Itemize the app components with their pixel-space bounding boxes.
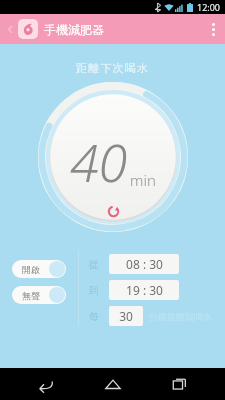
button[interactable]: Reset timer	[102, 200, 124, 222]
staticText: 分鐘提醒我喝水	[149, 311, 212, 322]
button[interactable]: 開啟	[12, 260, 66, 278]
staticText: 距離下次喝水	[76, 61, 150, 75]
staticText: 40	[70, 126, 128, 197]
button[interactable]: Recent apps	[158, 368, 202, 400]
staticText: 開啟	[22, 264, 40, 275]
staticText: 30	[119, 308, 133, 324]
staticText: 從	[89, 258, 103, 271]
button[interactable]: Up	[2, 21, 18, 37]
staticText: 每	[89, 310, 103, 323]
staticText: 08 : 30	[126, 256, 163, 272]
button[interactable]: 08 : 30	[109, 254, 179, 274]
button[interactable]: 30	[109, 306, 143, 326]
button[interactable]: Home	[91, 368, 135, 400]
button[interactable]: Back	[23, 368, 67, 400]
staticText: 19 : 30	[126, 282, 163, 298]
button[interactable]: 19 : 30	[109, 280, 179, 300]
staticText: 手機減肥器	[44, 22, 104, 37]
staticText: 12:00	[197, 1, 221, 13]
staticText: 到	[89, 284, 103, 297]
button[interactable]: 無聲	[12, 286, 66, 304]
staticText: min	[130, 170, 156, 190]
staticText: 無聲	[22, 290, 40, 301]
button[interactable]: More options	[201, 14, 225, 44]
